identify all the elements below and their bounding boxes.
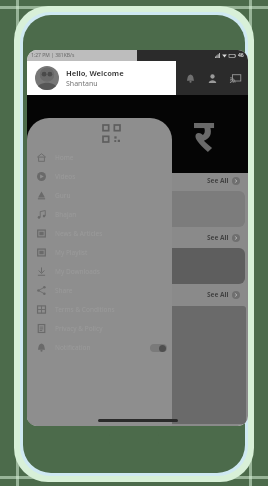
staticText: Terms & Conditions xyxy=(55,305,115,314)
staticText: See All xyxy=(207,176,229,185)
staticText: Share xyxy=(55,286,73,295)
button[interactable]: Account xyxy=(203,69,221,87)
button[interactable]: Cast xyxy=(226,69,244,87)
staticText: Shantanu xyxy=(66,79,98,89)
staticText: See All xyxy=(207,290,229,299)
button[interactable]: My Playlist xyxy=(27,243,172,262)
button[interactable]: Bhajan xyxy=(27,205,172,224)
button[interactable]: See All xyxy=(205,176,242,185)
button[interactable]: Notifications xyxy=(181,69,199,87)
button[interactable]: Guru xyxy=(27,186,172,205)
button[interactable]: Privacy & Policy xyxy=(27,319,172,338)
button[interactable]: Profile photo xyxy=(35,66,59,90)
staticText: 1:27 PM | 381KB/s xyxy=(31,52,75,59)
button[interactable]: Videos xyxy=(27,167,172,186)
staticText: See All xyxy=(207,233,229,242)
staticText: Hello, Welcome xyxy=(66,68,124,78)
button[interactable] xyxy=(30,248,135,284)
button[interactable] xyxy=(139,191,245,227)
staticText: र xyxy=(194,104,214,164)
staticText: Guru xyxy=(55,191,71,200)
staticText: 46 xyxy=(238,52,244,59)
button[interactable] xyxy=(139,248,245,284)
button[interactable]: See All xyxy=(205,233,242,242)
button[interactable]: Terms & Conditions xyxy=(27,300,172,319)
button[interactable] xyxy=(30,191,135,227)
button[interactable]: Notification xyxy=(27,338,172,357)
button[interactable]: See All xyxy=(205,290,242,299)
button[interactable]: News & Articles xyxy=(27,224,172,243)
